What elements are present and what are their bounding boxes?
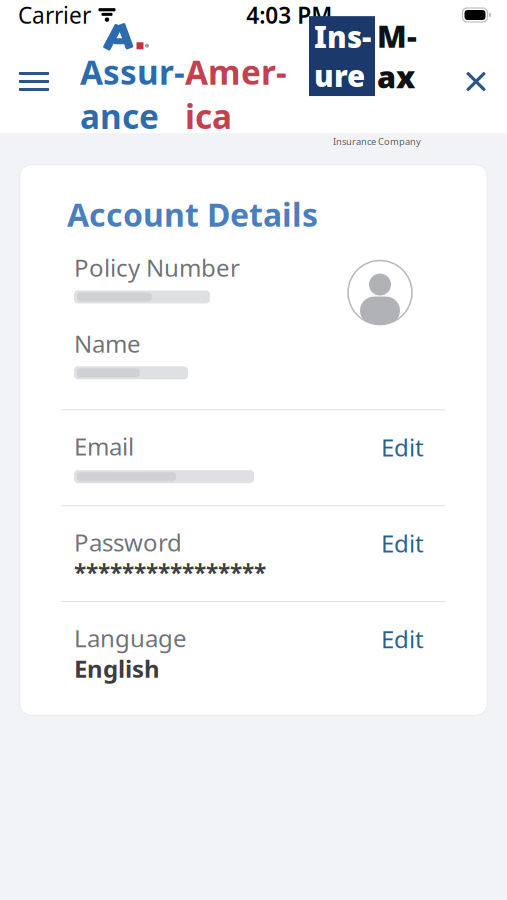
staticText: Account Details: [67, 193, 318, 236]
staticText: ****************: [74, 557, 266, 588]
button[interactable]: Password: [20, 506, 487, 601]
button[interactable]: Language: [20, 602, 487, 697]
staticText: Max: [377, 15, 417, 97]
staticText: Edit: [381, 623, 424, 655]
staticText: Password: [74, 526, 182, 558]
button[interactable]: Close: [455, 59, 497, 103]
button[interactable]: Email: [20, 410, 487, 505]
staticText: Insurance Company: [333, 135, 421, 148]
staticText: Carrier: [18, 0, 91, 30]
staticText: English: [74, 652, 160, 684]
staticText: Assurance: [80, 50, 185, 138]
staticText: Edit: [381, 431, 424, 463]
staticText: Language: [74, 622, 187, 654]
staticText: Email: [74, 430, 134, 462]
staticText: Insure: [314, 17, 371, 95]
staticText: Policy Number: [74, 252, 240, 283]
staticText: Edit: [381, 527, 424, 559]
button[interactable]: Menu: [10, 59, 58, 103]
staticText: Name: [74, 327, 141, 359]
staticText: America: [185, 50, 287, 138]
staticText: 4:03 PM: [246, 0, 332, 30]
